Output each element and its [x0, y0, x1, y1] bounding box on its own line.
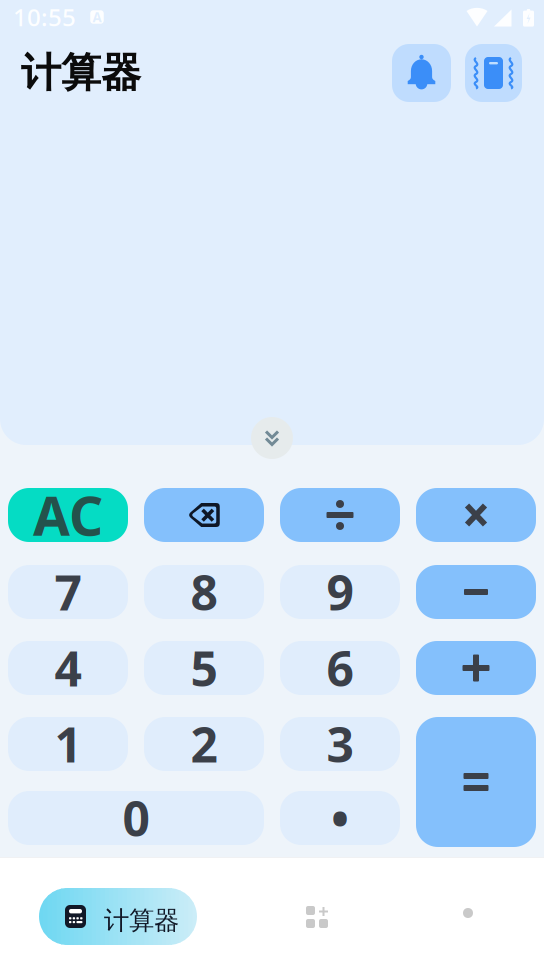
- button[interactable]: More: [440, 885, 496, 941]
- button[interactable]: [416, 488, 536, 542]
- staticText: 0: [122, 786, 149, 850]
- button[interactable]: 5: [144, 641, 264, 695]
- staticText: •: [331, 786, 349, 850]
- staticText: 7: [54, 560, 81, 624]
- staticText: 计算器: [104, 905, 179, 936]
- button[interactable]: 计算器: [39, 888, 197, 945]
- button[interactable]: 3: [280, 717, 400, 771]
- button[interactable]: 9: [280, 565, 400, 619]
- staticText: 6: [326, 636, 353, 700]
- button[interactable]: •: [280, 791, 400, 845]
- button[interactable]: [144, 488, 264, 542]
- staticText: 9: [326, 560, 353, 624]
- staticText: 4: [54, 636, 81, 700]
- staticText: 5: [190, 636, 217, 700]
- staticText: 2: [190, 712, 217, 776]
- button[interactable]: Sound: [392, 44, 451, 102]
- staticText: 10:55: [13, 1, 76, 33]
- button[interactable]: [280, 488, 400, 542]
- staticText: 计算器: [21, 48, 141, 97]
- button[interactable]: Show history: [251, 417, 293, 459]
- button[interactable]: 8: [144, 565, 264, 619]
- staticText: 3: [326, 712, 353, 776]
- button[interactable]: 2: [144, 717, 264, 771]
- button[interactable]: 1: [8, 717, 128, 771]
- staticText: AC: [33, 480, 103, 550]
- staticText: A: [92, 8, 101, 26]
- staticText: 8: [190, 560, 217, 624]
- button[interactable]: Vibrate: [465, 44, 522, 102]
- button[interactable]: [416, 565, 536, 619]
- button[interactable]: [416, 641, 536, 695]
- button[interactable]: [416, 717, 536, 847]
- button[interactable]: 4: [8, 641, 128, 695]
- staticText: 1: [54, 712, 81, 776]
- button[interactable]: 7: [8, 565, 128, 619]
- button[interactable]: Apps: [289, 889, 345, 945]
- button[interactable]: 6: [280, 641, 400, 695]
- button[interactable]: AC: [8, 488, 128, 542]
- button[interactable]: 0: [8, 791, 264, 845]
